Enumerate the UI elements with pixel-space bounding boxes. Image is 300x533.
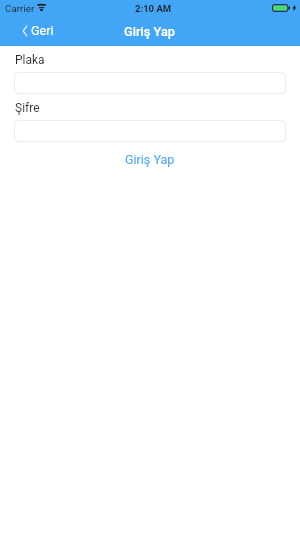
staticText: Giriş Yap bbox=[125, 152, 175, 167]
staticText: Plaka bbox=[15, 53, 45, 67]
staticText: Carrier bbox=[5, 3, 35, 14]
button[interactable] bbox=[14, 120, 286, 142]
staticText: Geri bbox=[31, 23, 54, 38]
staticText: Şifre bbox=[15, 101, 40, 115]
other: Back bbox=[23, 26, 27, 36]
button[interactable] bbox=[14, 72, 286, 94]
staticText: 2:10 AM bbox=[135, 3, 172, 14]
button[interactable]: Back bbox=[0, 18, 64, 43]
staticText: Giriş Yap bbox=[124, 24, 176, 39]
button[interactable]: Giriş Yap bbox=[111, 148, 189, 171]
